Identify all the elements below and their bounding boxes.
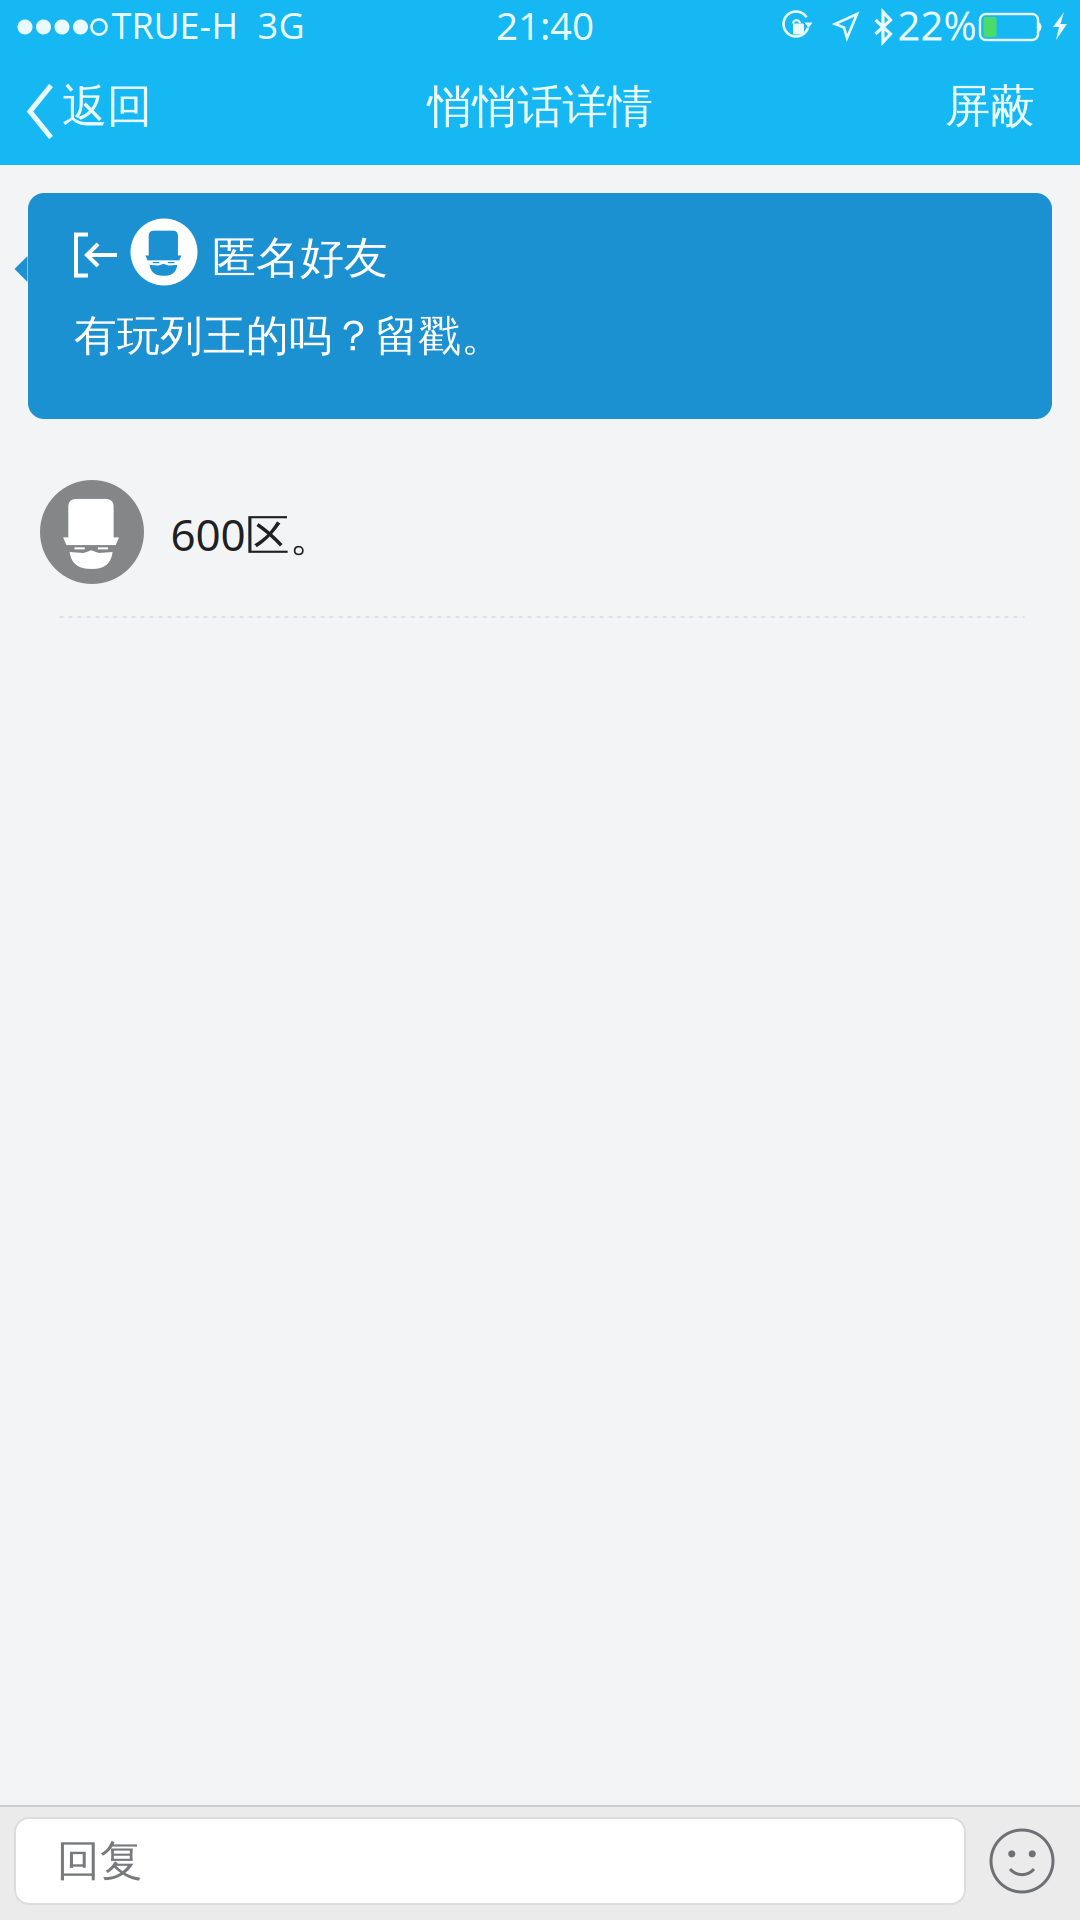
staticText: 悄悄话详情: [427, 79, 652, 135]
staticText: 600区。: [170, 505, 333, 563]
staticText: 回复: [57, 1835, 143, 1887]
staticText: 21:40: [496, 0, 594, 51]
staticText: 有玩列王的吗？留戳。: [74, 310, 504, 362]
staticText: TRUE-H: [111, 1, 238, 49]
staticText: 返回: [62, 79, 152, 134]
staticText: 屏蔽: [945, 79, 1035, 134]
button[interactable]: 屏蔽: [923, 56, 1065, 165]
button[interactable]: Emoji: [982, 1821, 1062, 1901]
button[interactable]: 600区。: [0, 431, 1080, 643]
staticText: 匿名好友: [212, 231, 388, 285]
staticText: 3G: [257, 1, 304, 49]
button[interactable]: 回复: [15, 1818, 965, 1904]
staticText: 22%: [897, 0, 976, 51]
button[interactable]: 返回: [0, 56, 170, 165]
